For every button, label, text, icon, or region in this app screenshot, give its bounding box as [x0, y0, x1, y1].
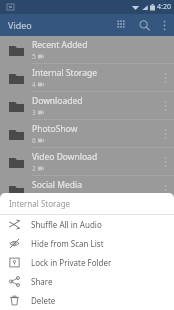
button[interactable]: PhotoShow: [0, 120, 174, 147]
button[interactable]: Delete: [0, 291, 174, 310]
button[interactable]: Downloaded: [0, 92, 174, 119]
button[interactable]: Item options: [156, 176, 174, 203]
staticText: Delete: [31, 295, 56, 306]
staticText: 2: [32, 164, 36, 173]
staticText: Video Download: [32, 151, 98, 163]
staticText: Internal Storage: [32, 67, 97, 79]
button[interactable]: Internal Storage: [0, 64, 174, 91]
button[interactable]: More options: [155, 16, 173, 34]
staticText: 4: [32, 192, 36, 201]
button[interactable]: Video Download: [0, 148, 174, 175]
staticText: Hide from Scan List: [31, 238, 104, 249]
staticText: Downloaded: [32, 95, 83, 107]
staticText: Recent Added: [32, 39, 88, 51]
button[interactable]: Social Media: [0, 176, 174, 203]
button[interactable]: Lock in Private Folder: [0, 253, 174, 272]
staticText: Internal Storage: [9, 198, 71, 209]
staticText: Share: [31, 276, 53, 287]
button[interactable]: Shuffle All in Audio: [0, 215, 174, 234]
staticText: 4: [32, 80, 36, 89]
staticText: 6: [32, 136, 36, 145]
staticText: 3: [32, 108, 36, 117]
staticText: Video: [8, 19, 32, 31]
staticText: Lock in Private Folder: [31, 257, 112, 268]
staticText: PhotoShow: [32, 123, 78, 135]
staticText: 4:20: [157, 2, 171, 12]
button[interactable]: Search: [133, 14, 155, 36]
button[interactable]: Grid view: [111, 14, 133, 36]
button[interactable]: Share: [0, 272, 174, 291]
staticText: 5: [32, 52, 36, 61]
staticText: Social Media: [32, 179, 82, 191]
button[interactable]: Recent Added: [0, 36, 174, 63]
button[interactable]: Hide from Scan List: [0, 234, 174, 253]
staticText: Shuffle All in Audio: [31, 219, 102, 230]
